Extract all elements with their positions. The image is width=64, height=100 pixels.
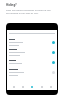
button[interactable]: Contacts (20, 84, 25, 89)
button[interactable] (7, 67, 57, 77)
button[interactable]: Calls (39, 84, 44, 89)
staticText: Hiding? (6, 3, 17, 7)
button[interactable] (7, 57, 57, 67)
button[interactable] (7, 37, 57, 47)
staticText: Plain encrypted messages turning off can… (6, 9, 53, 15)
button[interactable]: Chats (29, 84, 34, 89)
button[interactable] (7, 47, 57, 57)
button[interactable]: Settings (48, 84, 53, 89)
button[interactable]: Home (11, 84, 16, 89)
